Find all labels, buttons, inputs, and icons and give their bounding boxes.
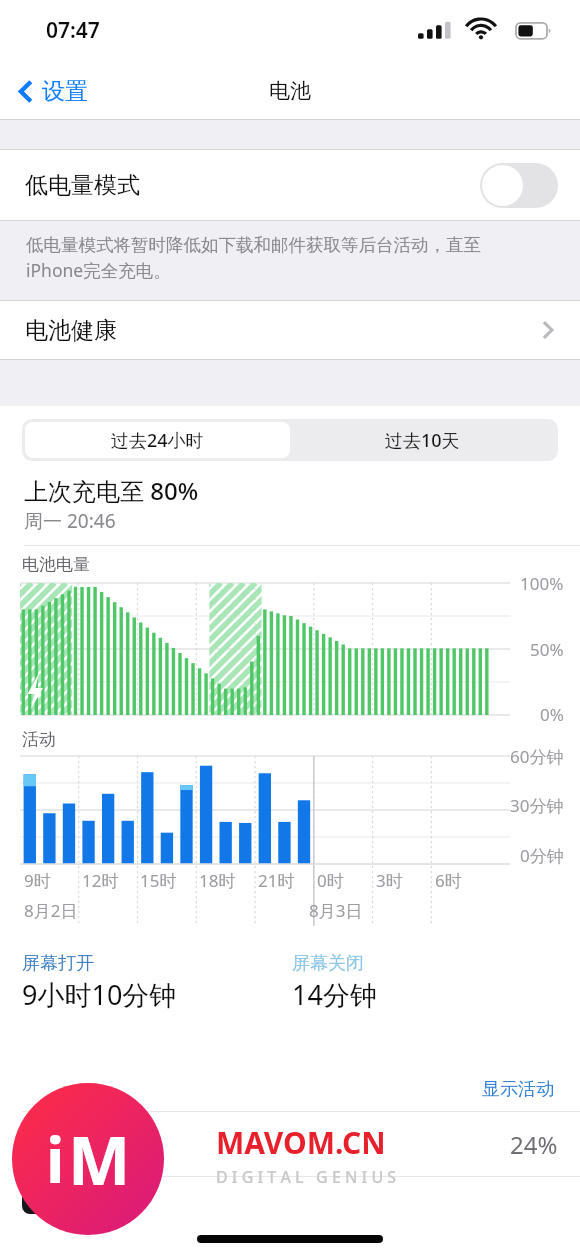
staticText: 30分钟 xyxy=(510,794,564,817)
staticText: 9时 xyxy=(24,869,51,892)
staticText: MAVOM.CN xyxy=(216,1122,386,1163)
staticText: 0时 xyxy=(317,869,344,892)
staticText: 屏幕打开 xyxy=(22,952,94,975)
staticText: 0分钟 xyxy=(520,844,564,867)
button[interactable]: 电池健康 xyxy=(0,301,580,359)
staticText: 电池健康 xyxy=(25,316,117,345)
staticText: 18时 xyxy=(199,869,236,892)
staticText: 电池电量 xyxy=(22,554,90,575)
staticText: 8月2日 xyxy=(24,899,78,922)
staticText: 低电量模式 xyxy=(25,171,140,200)
staticText: 12时 xyxy=(82,869,119,892)
staticText: 50% xyxy=(530,638,564,661)
button[interactable]: 抖音 xyxy=(0,1177,580,1217)
staticText: 15时 xyxy=(140,869,177,892)
staticText: 07:47 xyxy=(46,16,100,45)
staticText: 8月3日 xyxy=(309,899,363,922)
staticText: 活动 xyxy=(22,729,56,750)
staticText: 过去24小时 xyxy=(111,428,204,453)
button[interactable]: 过去10天 xyxy=(290,422,555,458)
button[interactable]: 低电量模式 xyxy=(0,150,580,220)
staticText: 60分钟 xyxy=(510,745,564,768)
staticText: 屏幕关闭 xyxy=(292,952,364,975)
staticText: 6时 xyxy=(435,869,462,892)
staticText: 14分钟 xyxy=(292,976,377,1013)
button[interactable]: 显示活动 xyxy=(478,1074,558,1105)
staticText: 上次充电至 80% xyxy=(24,474,199,507)
button[interactable]: 过去24小时 xyxy=(25,422,290,458)
staticText: 电池 xyxy=(269,78,311,104)
button[interactable]: 低电量模式开关 xyxy=(480,163,558,208)
staticText: 100% xyxy=(520,572,564,595)
staticText: 9小时10分钟 xyxy=(22,976,177,1013)
staticText: M xyxy=(68,1114,131,1204)
staticText: 24% xyxy=(510,1128,558,1161)
staticText: 低电量模式将暂时降低如下载和邮件获取等后台活动，直至iPhone完全充电。 xyxy=(26,234,538,283)
staticText: i xyxy=(46,1117,65,1201)
button[interactable]: 24% xyxy=(0,1112,580,1176)
staticText: 过去10天 xyxy=(385,428,460,453)
staticText: D I G I T A L G E N I U S xyxy=(216,1166,397,1188)
staticText: 3时 xyxy=(376,869,403,892)
staticText: 设置 xyxy=(42,77,88,106)
staticText: 显示活动 xyxy=(482,1078,554,1101)
staticText: 0% xyxy=(540,703,564,726)
staticText: 周一 20:46 xyxy=(24,508,116,534)
staticText: 21时 xyxy=(258,869,295,892)
button[interactable]: 设置 xyxy=(8,71,98,112)
staticText: 抖音 xyxy=(68,1183,114,1212)
